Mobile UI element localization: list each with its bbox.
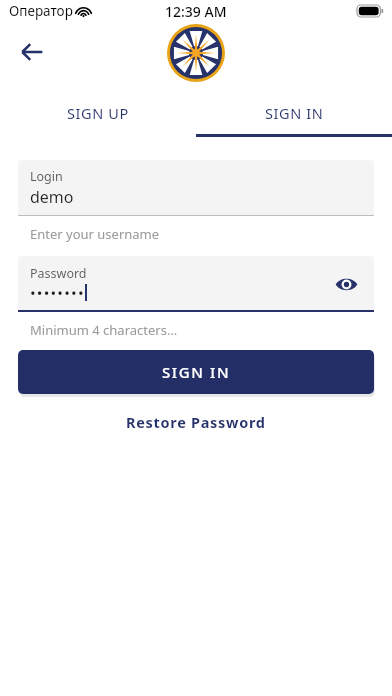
button[interactable]: Login: [18, 160, 374, 216]
staticText: 12:39 AM: [165, 2, 227, 21]
button[interactable]: Show password: [328, 266, 364, 302]
staticText: ••••••••: [30, 283, 85, 303]
staticText: Оператор: [9, 2, 73, 20]
staticText: Restore Password: [126, 412, 266, 432]
button[interactable]: SIGN IN: [196, 89, 392, 137]
staticText: Enter your username: [30, 225, 160, 243]
staticText: Minimum 4 characters...: [30, 321, 178, 339]
staticText: demo: [30, 186, 74, 208]
staticText: Login: [30, 168, 63, 185]
button[interactable]: SIGN IN: [18, 350, 374, 394]
button[interactable]: Password: [18, 256, 374, 312]
button[interactable]: Back: [10, 30, 54, 74]
staticText: SIGN IN: [162, 362, 231, 382]
staticText: SIGN UP: [67, 103, 129, 123]
button[interactable]: SIGN UP: [0, 89, 196, 137]
staticText: SIGN IN: [265, 103, 324, 123]
button[interactable]: Restore Password: [114, 408, 278, 436]
staticText: Password: [30, 265, 87, 282]
